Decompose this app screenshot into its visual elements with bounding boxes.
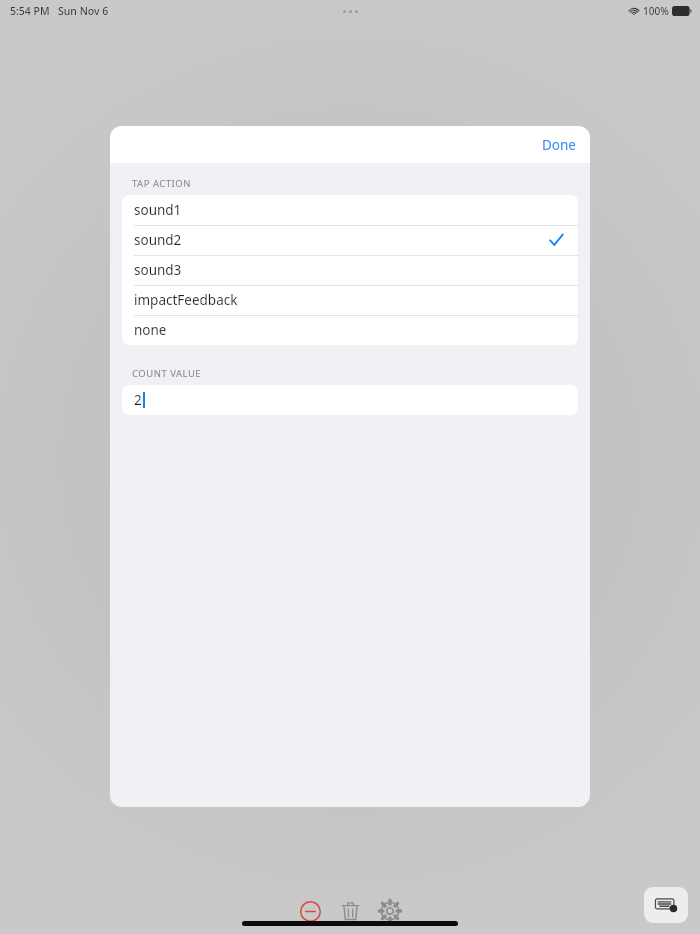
staticText: impactFeedback (134, 291, 238, 309)
staticText: Done (542, 136, 576, 154)
button[interactable]: sound1 (122, 195, 578, 225)
staticText: sound3 (134, 261, 182, 279)
staticText: TAP ACTION (132, 177, 191, 190)
button[interactable]: none (122, 315, 578, 345)
button[interactable]: 2 (122, 385, 578, 415)
button[interactable]: impactFeedback (122, 285, 578, 315)
button[interactable]: Delete (336, 897, 364, 925)
staticText: none (134, 321, 167, 339)
staticText: COUNT VALUE (132, 367, 202, 380)
staticText: 100% (643, 4, 669, 18)
staticText: Sun Nov 6 (58, 4, 109, 18)
button[interactable]: sound2 (122, 225, 578, 255)
staticText: 5:54 PM (10, 4, 50, 18)
staticText: sound1 (134, 201, 182, 219)
button[interactable]: Done (536, 132, 582, 158)
staticText: 2 (134, 391, 142, 409)
staticText: sound2 (134, 231, 182, 249)
button[interactable]: Hide keyboard (644, 887, 688, 923)
button[interactable]: Remove (296, 897, 324, 925)
button[interactable]: sound3 (122, 255, 578, 285)
button[interactable]: Settings (376, 897, 404, 925)
